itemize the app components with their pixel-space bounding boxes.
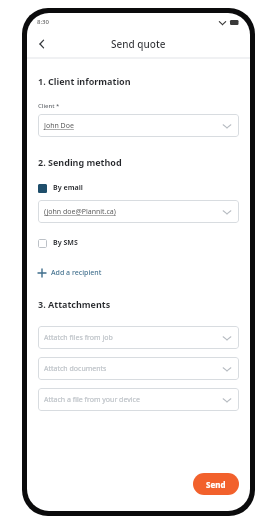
staticText: Attach a file from your device	[44, 395, 221, 405]
staticText: 2. Sending method	[38, 156, 122, 168]
staticText: Add a recipient	[51, 268, 102, 278]
button[interactable]: Attach a file from your device	[38, 388, 239, 411]
button[interactable]: John Doe	[38, 114, 239, 137]
staticText: Attatch documents	[44, 364, 221, 374]
staticText: By email	[53, 183, 83, 193]
staticText: 3. Attatchments	[38, 298, 111, 310]
button[interactable]: By email	[38, 182, 239, 194]
staticText: 8:30	[37, 18, 49, 26]
staticText: Attatch files from job	[44, 333, 221, 343]
staticText: Send quote	[111, 37, 166, 51]
staticText: By SMS	[53, 238, 78, 248]
staticText: 1. Client information	[38, 75, 131, 87]
staticText: (john doe@Plannit.ca)	[44, 207, 221, 217]
button[interactable]: Send	[193, 473, 239, 495]
staticText: Send	[206, 479, 226, 490]
button[interactable]: Back	[33, 35, 51, 53]
staticText: John Doe	[44, 121, 221, 131]
button[interactable]: (john doe@Plannit.ca)	[38, 200, 239, 223]
button[interactable]: Add a recipient	[38, 266, 102, 280]
button[interactable]: Attatch files from job	[38, 326, 239, 349]
button[interactable]: By SMS	[38, 237, 239, 249]
staticText: Client *	[38, 102, 60, 110]
button[interactable]: Attatch documents	[38, 357, 239, 380]
